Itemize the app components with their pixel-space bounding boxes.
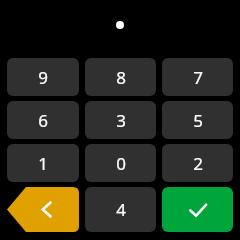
- button[interactable]: 6: [7, 101, 79, 139]
- button[interactable]: 9: [7, 58, 79, 96]
- staticText: 8: [116, 66, 126, 89]
- staticText: 9: [38, 66, 48, 89]
- button[interactable]: Backspace: [7, 187, 79, 232]
- button[interactable]: 8: [85, 58, 156, 96]
- button[interactable]: 7: [162, 58, 233, 96]
- staticText: 6: [38, 109, 48, 132]
- staticText: 5: [193, 109, 203, 132]
- staticText: 0: [116, 152, 126, 175]
- button[interactable]: 5: [162, 101, 233, 139]
- button[interactable]: 1: [7, 144, 79, 182]
- staticText: 4: [116, 198, 126, 221]
- staticText: 2: [193, 152, 203, 175]
- button[interactable]: 4: [85, 187, 156, 232]
- button[interactable]: 0: [85, 144, 156, 182]
- button[interactable]: 2: [162, 144, 233, 182]
- staticText: 3: [116, 109, 126, 132]
- button[interactable]: Confirm: [162, 187, 233, 232]
- button[interactable]: 3: [85, 101, 156, 139]
- staticText: 7: [193, 66, 203, 89]
- staticText: 1: [38, 152, 48, 175]
